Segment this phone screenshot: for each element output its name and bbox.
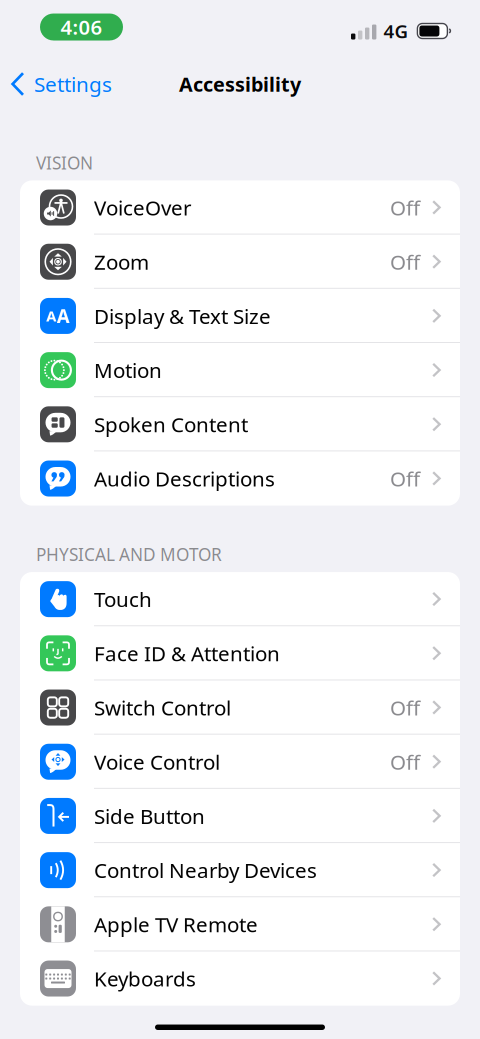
button[interactable]: Touch	[20, 572, 460, 626]
staticText: 4G	[383, 18, 408, 44]
button[interactable]: Settings	[0, 61, 112, 107]
button[interactable]: VoiceOver	[20, 180, 460, 235]
button[interactable]: Control Nearby Devices	[20, 843, 460, 897]
button[interactable]: Motion	[20, 343, 460, 397]
staticText: Off	[390, 193, 420, 221]
staticText: Spoken Content	[94, 410, 248, 438]
staticText: Settings	[34, 70, 112, 98]
button[interactable]: Side Button	[20, 789, 460, 843]
button[interactable]: A	[20, 289, 460, 343]
button[interactable]: Audio Descriptions	[20, 451, 460, 506]
staticText: Audio Descriptions	[94, 464, 275, 492]
staticText: Keyboards	[94, 965, 196, 993]
staticText: Switch Control	[94, 694, 231, 722]
staticText: Accessibility	[179, 71, 301, 97]
button[interactable]: Voice Control	[20, 735, 460, 789]
staticText: Face ID & Attention	[94, 639, 280, 667]
staticText: VoiceOver	[94, 193, 191, 221]
staticText: Off	[390, 748, 420, 776]
staticText: Side Button	[94, 802, 205, 830]
staticText: Touch	[94, 585, 152, 613]
button[interactable]: Switch Control	[20, 680, 460, 735]
staticText: A	[46, 306, 56, 326]
staticText: Motion	[94, 356, 162, 384]
button[interactable]: Spoken Content	[20, 397, 460, 451]
staticText: VISION	[36, 151, 93, 174]
staticText: Voice Control	[94, 748, 220, 776]
staticText: Display & Text Size	[94, 302, 271, 330]
button[interactable]: Apple TV Remote	[20, 897, 460, 951]
button[interactable]: Face ID & Attention	[20, 626, 460, 680]
staticText: A	[57, 303, 70, 329]
button[interactable]: Zoom	[20, 235, 460, 289]
staticText: Off	[390, 464, 420, 492]
staticText: Off	[390, 694, 420, 722]
staticText: Off	[390, 248, 420, 276]
staticText: PHYSICAL AND MOTOR	[36, 543, 222, 566]
staticText: Apple TV Remote	[94, 910, 258, 938]
button[interactable]: Keyboards	[20, 951, 460, 1006]
staticText: 4:06	[60, 13, 102, 41]
staticText: Zoom	[94, 248, 149, 276]
staticText: Control Nearby Devices	[94, 856, 317, 884]
